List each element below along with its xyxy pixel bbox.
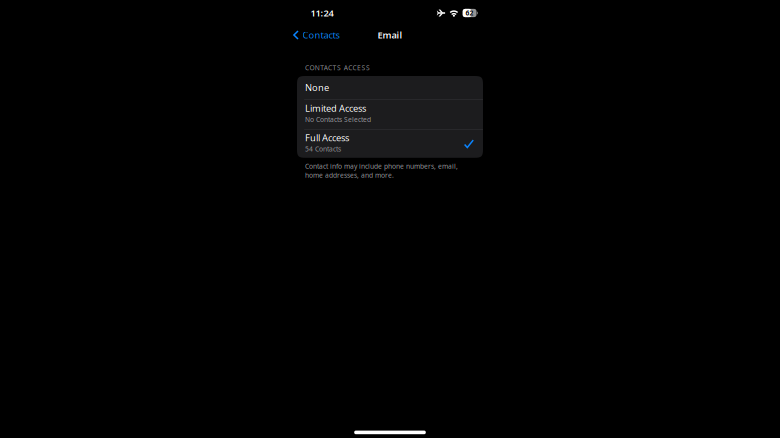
staticText: 11:24 — [310, 7, 333, 19]
staticText: Full Access — [305, 131, 349, 144]
staticText: Email — [377, 29, 402, 41]
button[interactable]: Limited Access — [297, 100, 483, 129]
button[interactable]: Contacts — [285, 27, 339, 43]
staticText: Contact info may include phone numbers, … — [305, 162, 458, 179]
staticText: Contacts — [302, 29, 339, 41]
staticText: 54 Contacts — [305, 144, 341, 153]
button[interactable]: None — [297, 76, 483, 99]
staticText: Limited Access — [305, 102, 366, 114]
staticText: CONTACTS ACCESS — [305, 63, 370, 72]
button[interactable]: Full Access — [297, 130, 483, 158]
staticText: 62 — [465, 9, 473, 17]
staticText: None — [305, 81, 329, 94]
staticText: No Contacts Selected — [305, 115, 371, 124]
